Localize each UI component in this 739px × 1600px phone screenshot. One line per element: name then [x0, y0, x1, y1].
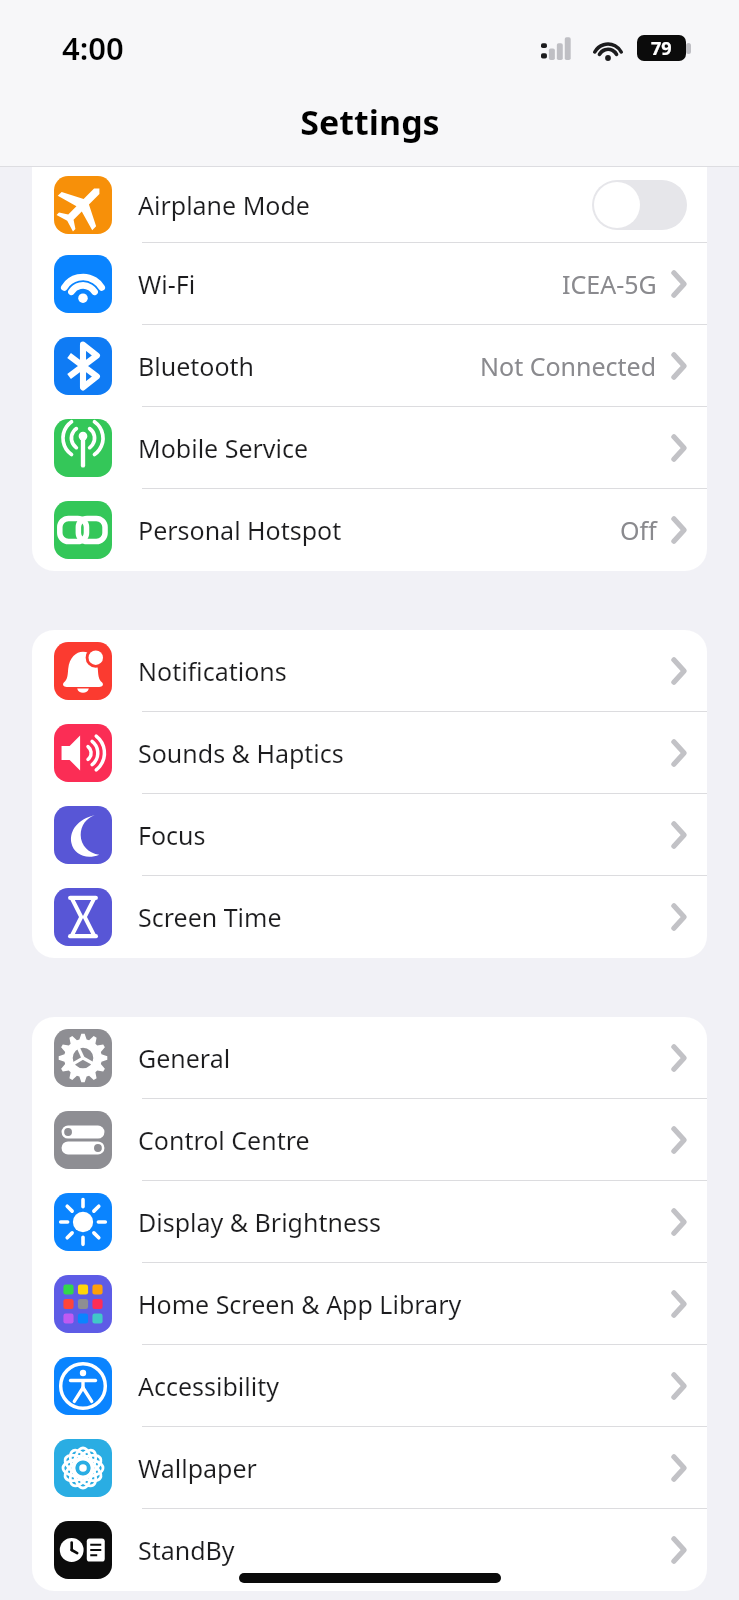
staticText: Screen Time [138, 900, 282, 934]
button[interactable]: Wallpaper [32, 1427, 707, 1509]
button[interactable]: Personal Hotspot [32, 489, 707, 571]
button[interactable]: Airplane Mode [32, 167, 707, 243]
button[interactable]: Home Screen & App Library [32, 1263, 707, 1345]
button[interactable]: Focus [32, 794, 707, 876]
staticText: Settings [300, 99, 440, 145]
button[interactable]: Wi-Fi [32, 243, 707, 325]
button[interactable]: General [32, 1017, 707, 1099]
staticText: Display & Brightness [138, 1205, 381, 1239]
staticText: Not Connected [480, 349, 657, 383]
staticText: 4:00 [62, 27, 124, 69]
button[interactable]: Accessibility [32, 1345, 707, 1427]
staticText: General [138, 1041, 231, 1075]
staticText: Off [620, 513, 657, 547]
button[interactable]: Mobile Service [32, 407, 707, 489]
staticText: Focus [138, 818, 206, 852]
staticText: Wallpaper [138, 1451, 257, 1485]
button[interactable]: Airplane Mode toggle [592, 180, 687, 230]
staticText: Wi-Fi [138, 267, 196, 301]
staticText: Home Screen & App Library [138, 1287, 462, 1321]
button[interactable]: Notifications [32, 630, 707, 712]
staticText: Notifications [138, 654, 287, 688]
staticText: Airplane Mode [138, 188, 310, 222]
button[interactable]: Screen Time [32, 876, 707, 958]
button[interactable]: StandBy [32, 1509, 707, 1591]
button[interactable]: Bluetooth [32, 325, 707, 407]
button[interactable]: Sounds & Haptics [32, 712, 707, 794]
staticText: Sounds & Haptics [138, 736, 344, 770]
staticText: 79 [651, 36, 672, 61]
staticText: Control Centre [138, 1123, 310, 1157]
staticText: StandBy [138, 1533, 235, 1567]
button[interactable]: Control Centre [32, 1099, 707, 1181]
staticText: Mobile Service [138, 431, 309, 465]
button[interactable]: Display & Brightness [32, 1181, 707, 1263]
staticText: Personal Hotspot [138, 513, 342, 547]
staticText: Bluetooth [138, 349, 255, 383]
staticText: Accessibility [138, 1369, 279, 1403]
staticText: ICEA-5G [562, 267, 657, 301]
